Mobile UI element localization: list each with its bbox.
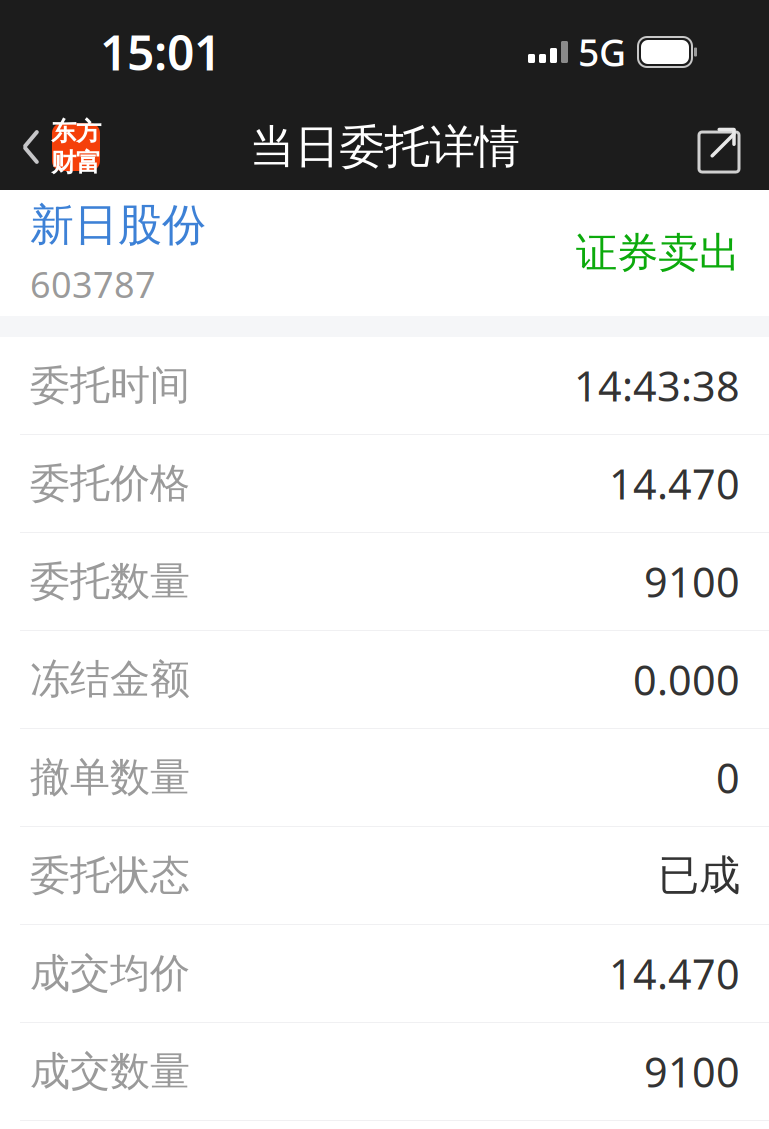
staticText: 委托数量: [30, 557, 190, 606]
staticText: 财: [51, 147, 76, 178]
staticText: 603787: [30, 260, 156, 308]
staticText: 5G: [578, 27, 626, 77]
staticText: 富: [76, 147, 101, 178]
staticText: 委托时间: [30, 361, 190, 410]
staticText: 成交均价: [30, 949, 190, 998]
staticText: 成交数量: [30, 1047, 190, 1096]
staticText: 14.470: [609, 456, 740, 511]
staticText: 14:43:38: [574, 358, 740, 413]
button[interactable]: 分享: [693, 107, 769, 187]
staticText: 方: [76, 116, 101, 147]
staticText: 9100: [644, 554, 740, 609]
staticText: 新日股份: [30, 198, 206, 252]
staticText: 9100: [644, 1044, 740, 1099]
staticText: 当日委托详情: [249, 119, 519, 175]
staticText: 14.470: [609, 946, 740, 1001]
staticText: 0.000: [633, 652, 740, 707]
button[interactable]: 返回: [0, 109, 100, 185]
staticText: 委托状态: [30, 851, 190, 900]
staticText: 已成: [658, 850, 740, 901]
staticText: 撤单数量: [30, 753, 190, 802]
staticText: 委托价格: [30, 459, 190, 508]
staticText: 证券卖出: [576, 228, 740, 278]
staticText: 0: [716, 750, 740, 805]
staticText: 冻结金额: [30, 655, 190, 704]
staticText: 东: [51, 116, 76, 147]
staticText: 15:01: [100, 20, 221, 84]
